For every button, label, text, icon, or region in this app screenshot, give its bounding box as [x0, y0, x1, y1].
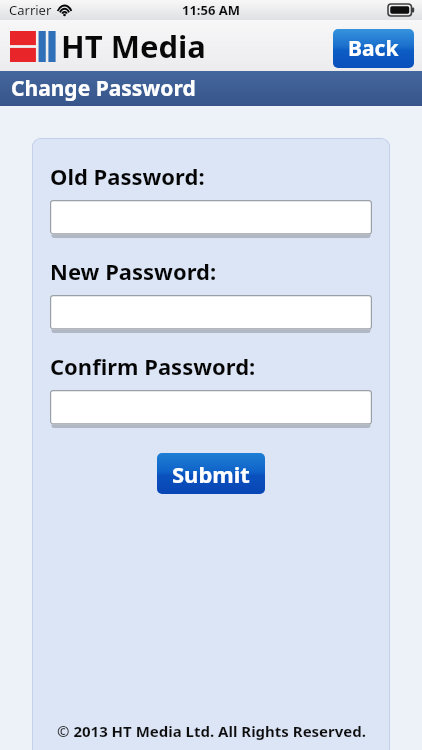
staticText: New Password: [50, 256, 217, 286]
staticText: HT Media [61, 25, 206, 67]
button[interactable] [50, 390, 372, 427]
staticText: Change Password [11, 74, 196, 103]
staticText: 11:56 AM [182, 1, 241, 19]
button[interactable]: Submit [157, 453, 265, 494]
staticText: Old Password: [50, 161, 205, 191]
staticText: Carrier [9, 1, 52, 19]
other: Wi-Fi signal [57, 4, 72, 16]
button[interactable]: Back [333, 29, 414, 68]
button[interactable] [50, 200, 372, 237]
staticText: Submit [172, 459, 250, 489]
other: Battery [388, 4, 415, 16]
staticText: Confirm Password: [50, 351, 256, 381]
button[interactable] [50, 295, 372, 332]
staticText: Back [348, 34, 399, 63]
staticText: © 2013 HT Media Ltd. All Rights Reserved… [57, 721, 366, 741]
